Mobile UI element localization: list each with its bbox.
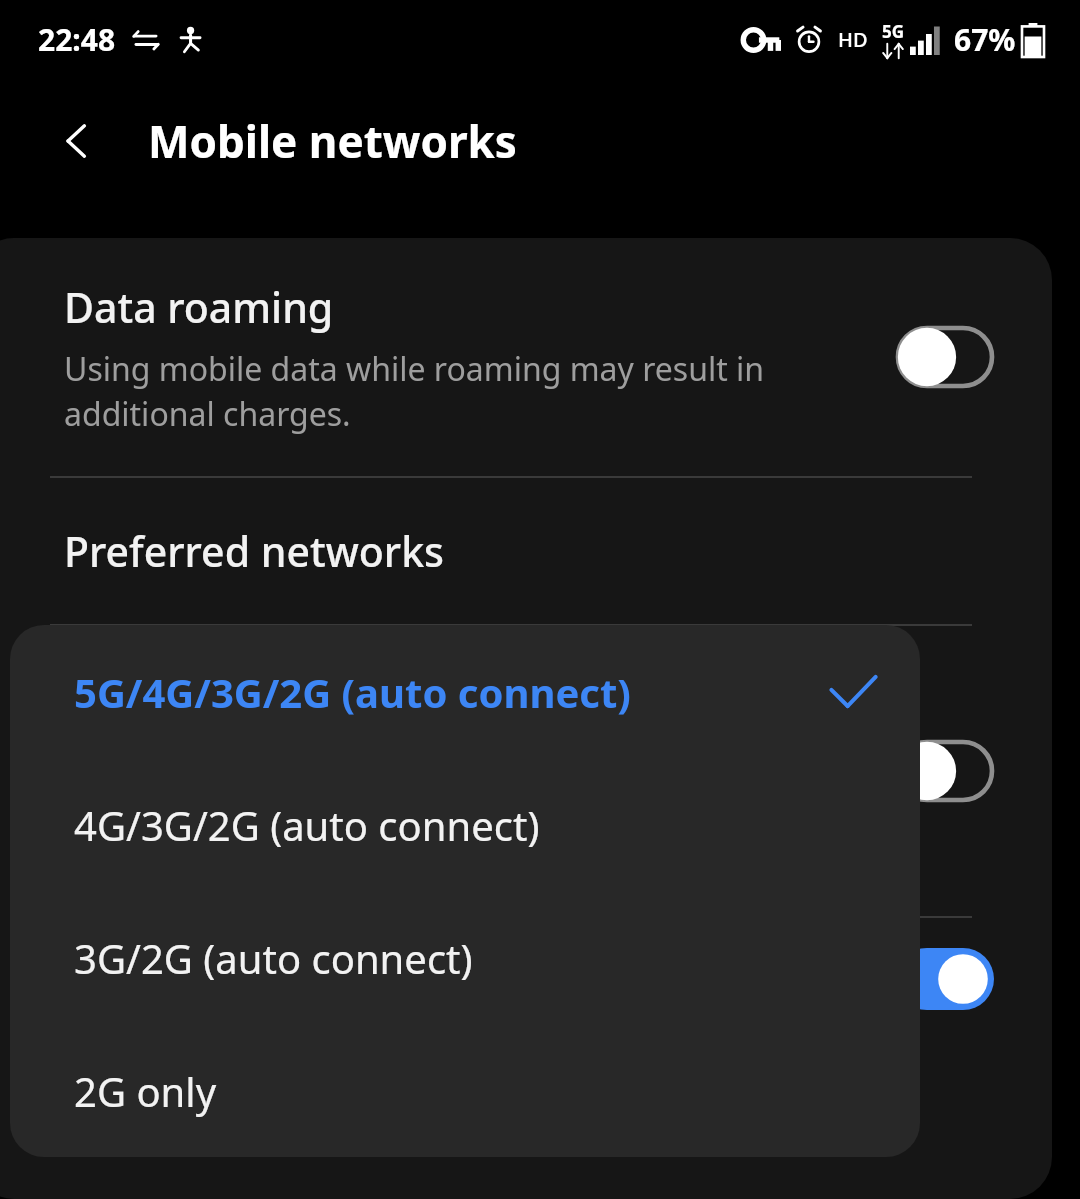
button[interactable]: 5G/4G/3G/2G (auto connect) [10, 625, 920, 758]
button[interactable]: Data roaming [0, 238, 1052, 476]
button[interactable]: 2G only [10, 1024, 920, 1157]
staticText: Mobile networks [148, 111, 517, 171]
staticText: Preferred networks [64, 523, 444, 579]
staticText: 2G only [74, 1064, 880, 1118]
staticText: Turn off 5G to save battery when your ph… [64, 952, 738, 996]
button[interactable]: 3G/2G (auto connect) [10, 891, 920, 1024]
button[interactable]: 4G/3G/2G (auto connect) [10, 758, 920, 891]
staticText: 5G/4G/3G/2G (auto connect) [74, 665, 826, 719]
staticText: 4G/3G/2G (auto connect) [74, 798, 880, 852]
staticText: 67% [954, 19, 1016, 60]
staticText: 5G [882, 20, 905, 43]
button[interactable] [0, 626, 1052, 916]
staticText: 22:48 [38, 19, 116, 60]
button[interactable]: Preferred networks [0, 478, 1052, 624]
staticText: Data roaming [64, 279, 334, 335]
button[interactable]: Turn off 5G to save battery when your ph… [0, 918, 1052, 1158]
button[interactable]: Back [40, 103, 116, 179]
staticText: Using mobile data while roaming may resu… [64, 347, 872, 435]
staticText: HD [838, 26, 868, 53]
staticText: 3G/2G (auto connect) [74, 931, 880, 985]
